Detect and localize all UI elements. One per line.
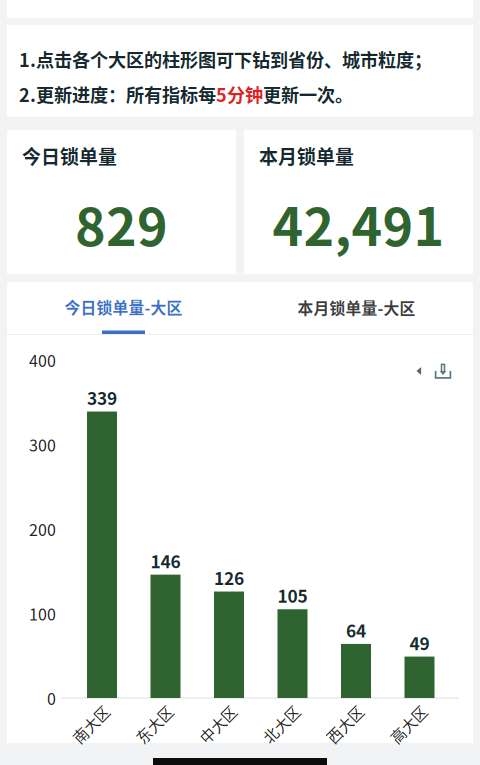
staticText: 400 xyxy=(29,348,56,372)
staticText: 本月锁单量 xyxy=(259,142,354,169)
staticText: 西大区 xyxy=(322,713,367,735)
staticText: 829 xyxy=(75,186,168,261)
staticText: 2.更新进度：所有指标每 xyxy=(19,81,216,107)
staticText: 42,491 xyxy=(272,186,444,261)
staticText: 高大区 xyxy=(386,713,431,735)
button[interactable]: Download chart xyxy=(431,360,455,382)
staticText: 0 xyxy=(47,686,56,710)
staticText: 南大区 xyxy=(68,713,113,735)
staticText: 今日锁单量-大区 xyxy=(64,296,182,318)
staticText: 东大区 xyxy=(132,713,177,735)
staticText: 105 xyxy=(277,583,307,608)
staticText: 中大区 xyxy=(195,713,240,735)
staticText: 126 xyxy=(214,565,244,590)
staticText: 339 xyxy=(87,385,117,410)
button[interactable]: 本月锁单量 xyxy=(244,130,473,274)
staticText: 今日锁单量 xyxy=(22,142,117,169)
staticText: 64 xyxy=(346,617,366,642)
staticText: 更新一次。 xyxy=(263,81,353,107)
staticText: 本月锁单量-大区 xyxy=(297,296,415,319)
button[interactable]: Previous xyxy=(411,363,427,379)
staticText: 北大区 xyxy=(259,713,304,735)
staticText: 1.点击各个大区的柱形图可下钻到省份、城市粒度； xyxy=(19,46,432,72)
button[interactable]: 今日锁单量 xyxy=(7,130,236,274)
staticText: 49 xyxy=(409,630,429,655)
staticText: 146 xyxy=(150,548,180,573)
staticText: 200 xyxy=(29,517,56,541)
button[interactable]: 本月锁单量-大区 xyxy=(240,282,473,334)
staticText: 300 xyxy=(29,433,56,456)
staticText: 100 xyxy=(29,602,56,625)
staticText: 5分钟 xyxy=(216,81,263,107)
button[interactable]: 今日锁单量-大区 xyxy=(7,282,240,334)
